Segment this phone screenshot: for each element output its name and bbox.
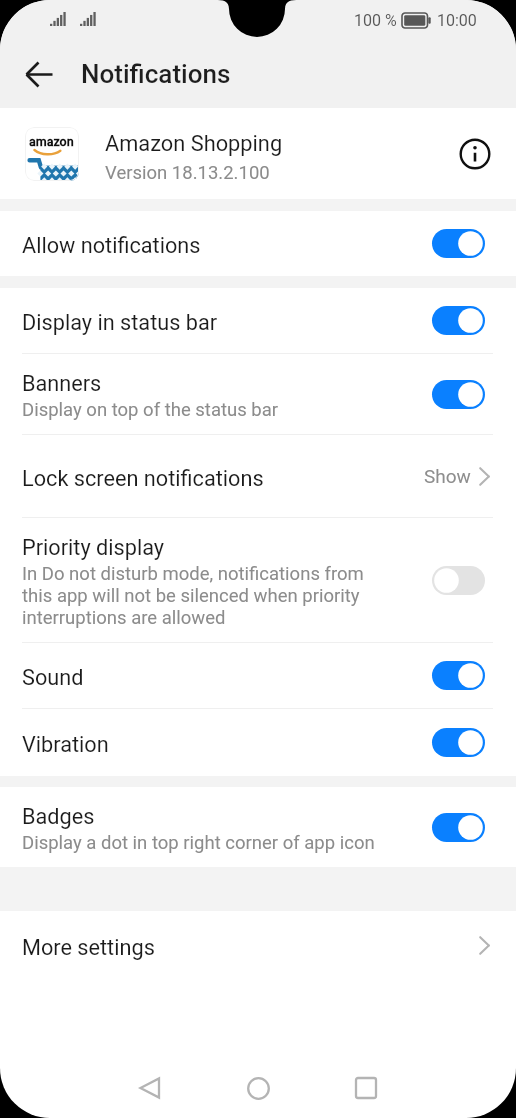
staticText: Sound bbox=[22, 665, 84, 690]
staticText: Display in status bar bbox=[22, 310, 218, 335]
staticText: More settings bbox=[22, 935, 155, 960]
staticText: Show bbox=[424, 465, 471, 487]
staticText: Amazon Shopping bbox=[105, 131, 283, 157]
staticText: Display a dot in top right corner of app… bbox=[22, 832, 375, 854]
button[interactable]: Priority display bbox=[0, 518, 516, 642]
button[interactable]: On bbox=[432, 813, 485, 842]
button[interactable]: Home bbox=[228, 1058, 288, 1118]
staticText: Banners bbox=[22, 371, 102, 396]
staticText: Vibration bbox=[22, 732, 109, 757]
button[interactable]: Badges bbox=[0, 787, 516, 867]
button[interactable]: On bbox=[432, 306, 485, 335]
staticText: 10:00 bbox=[437, 11, 477, 30]
button[interactable]: On bbox=[432, 380, 485, 409]
button[interactable]: App info bbox=[453, 132, 497, 176]
button[interactable]: Banners bbox=[0, 354, 516, 434]
button[interactable]: On bbox=[432, 229, 485, 258]
staticText: Priority display bbox=[22, 535, 165, 560]
button[interactable]: More settings bbox=[0, 911, 516, 980]
staticText: 100 % bbox=[354, 11, 397, 30]
button[interactable]: Off bbox=[432, 566, 485, 595]
staticText: In Do not disturb mode, notifications fr… bbox=[22, 563, 384, 629]
staticText: amazon bbox=[29, 134, 74, 149]
button[interactable]: Back bbox=[120, 1058, 180, 1118]
staticText: Lock screen notifications bbox=[22, 466, 264, 491]
button[interactable]: Allow notifications bbox=[0, 211, 516, 276]
staticText: Badges bbox=[22, 804, 95, 829]
staticText: Notifications bbox=[81, 59, 231, 89]
button[interactable]: Recents bbox=[336, 1058, 396, 1118]
staticText: Version 18.13.2.100 bbox=[105, 162, 270, 184]
button[interactable]: amazon bbox=[0, 108, 516, 199]
button[interactable]: Navigate up bbox=[15, 50, 63, 98]
button[interactable]: On bbox=[432, 661, 485, 690]
button[interactable]: Vibration bbox=[0, 709, 516, 776]
button[interactable]: On bbox=[432, 728, 485, 757]
button[interactable]: Display in status bar bbox=[0, 288, 516, 353]
staticText: Display on top of the status bar bbox=[22, 399, 279, 421]
staticText: Allow notifications bbox=[22, 233, 201, 258]
button[interactable]: Lock screen notifications bbox=[0, 435, 516, 517]
button[interactable]: Sound bbox=[0, 643, 516, 708]
